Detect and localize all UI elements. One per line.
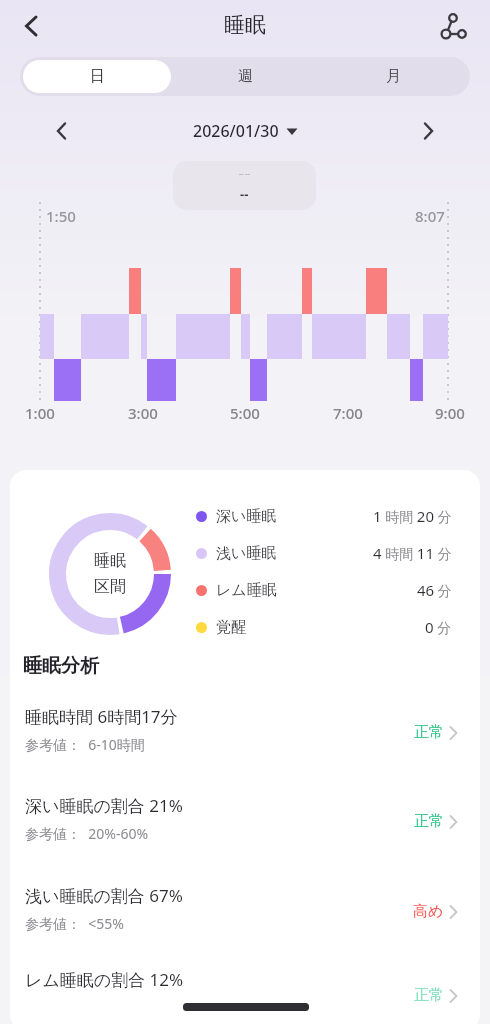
staticText: 1 時間 20 分 bbox=[373, 506, 452, 526]
button[interactable] bbox=[50, 119, 74, 143]
staticText: 0 分 bbox=[425, 617, 452, 637]
button[interactable] bbox=[416, 119, 440, 143]
button[interactable]: 睡眠時間 6時間17分 bbox=[10, 697, 480, 785]
staticText: 3:00 bbox=[128, 403, 158, 423]
staticText: 4 時間 11 分 bbox=[373, 543, 452, 563]
staticText: 区間 bbox=[94, 577, 126, 597]
button[interactable]: 浅い睡眠の割合 67% bbox=[10, 876, 480, 964]
staticText: -- -- bbox=[239, 169, 250, 179]
staticText: 日 bbox=[90, 67, 105, 86]
button[interactable]: 週 bbox=[171, 60, 319, 93]
staticText: 正常 bbox=[414, 986, 444, 1005]
staticText: 正常 bbox=[414, 812, 444, 831]
staticText: 深い睡眠の割合 21% bbox=[25, 794, 183, 817]
staticText: 参考値： 6-10時間 bbox=[25, 735, 145, 754]
staticText: 9:00 bbox=[435, 403, 465, 423]
staticText: 5:00 bbox=[230, 403, 260, 423]
button[interactable]: 深い睡眠の割合 21% bbox=[10, 786, 480, 874]
staticText: 1:50 bbox=[46, 206, 76, 226]
staticText: 深い睡眠 bbox=[216, 507, 277, 526]
button[interactable] bbox=[436, 10, 470, 44]
staticText: 睡眠時間 6時間17分 bbox=[25, 705, 178, 728]
staticText: 浅い睡眠の割合 67% bbox=[25, 884, 183, 907]
button[interactable]: 2026/01/30 bbox=[193, 120, 298, 142]
staticText: 睡眠分析 bbox=[23, 654, 99, 678]
staticText: 8:07 bbox=[415, 206, 445, 226]
staticText: 睡眠 bbox=[224, 12, 266, 38]
button[interactable]: 日 bbox=[23, 60, 171, 93]
staticText: レム睡眠の割合 12% bbox=[25, 968, 184, 991]
staticText: 参考値： <55% bbox=[25, 914, 124, 933]
button[interactable] bbox=[18, 12, 46, 40]
staticText: 参考値： 20%-60% bbox=[25, 824, 149, 843]
staticText: レム睡眠 bbox=[216, 581, 277, 600]
staticText: 浅い睡眠 bbox=[216, 544, 277, 563]
staticText: 46 分 bbox=[417, 580, 452, 600]
staticText: 2026/01/30 bbox=[193, 120, 279, 142]
button[interactable]: 月 bbox=[319, 60, 467, 93]
staticText: 正常 bbox=[414, 723, 444, 742]
staticText: 月 bbox=[386, 67, 401, 86]
button[interactable]: レム睡眠の割合 12% bbox=[10, 960, 480, 1024]
staticText: 高め bbox=[413, 902, 444, 921]
staticText: 1:00 bbox=[25, 403, 55, 423]
staticText: 週 bbox=[238, 67, 253, 86]
staticText: 睡眠 bbox=[94, 551, 126, 571]
staticText: -- bbox=[240, 185, 249, 203]
staticText: 覚醒 bbox=[216, 618, 246, 637]
staticText: 7:00 bbox=[333, 403, 363, 423]
